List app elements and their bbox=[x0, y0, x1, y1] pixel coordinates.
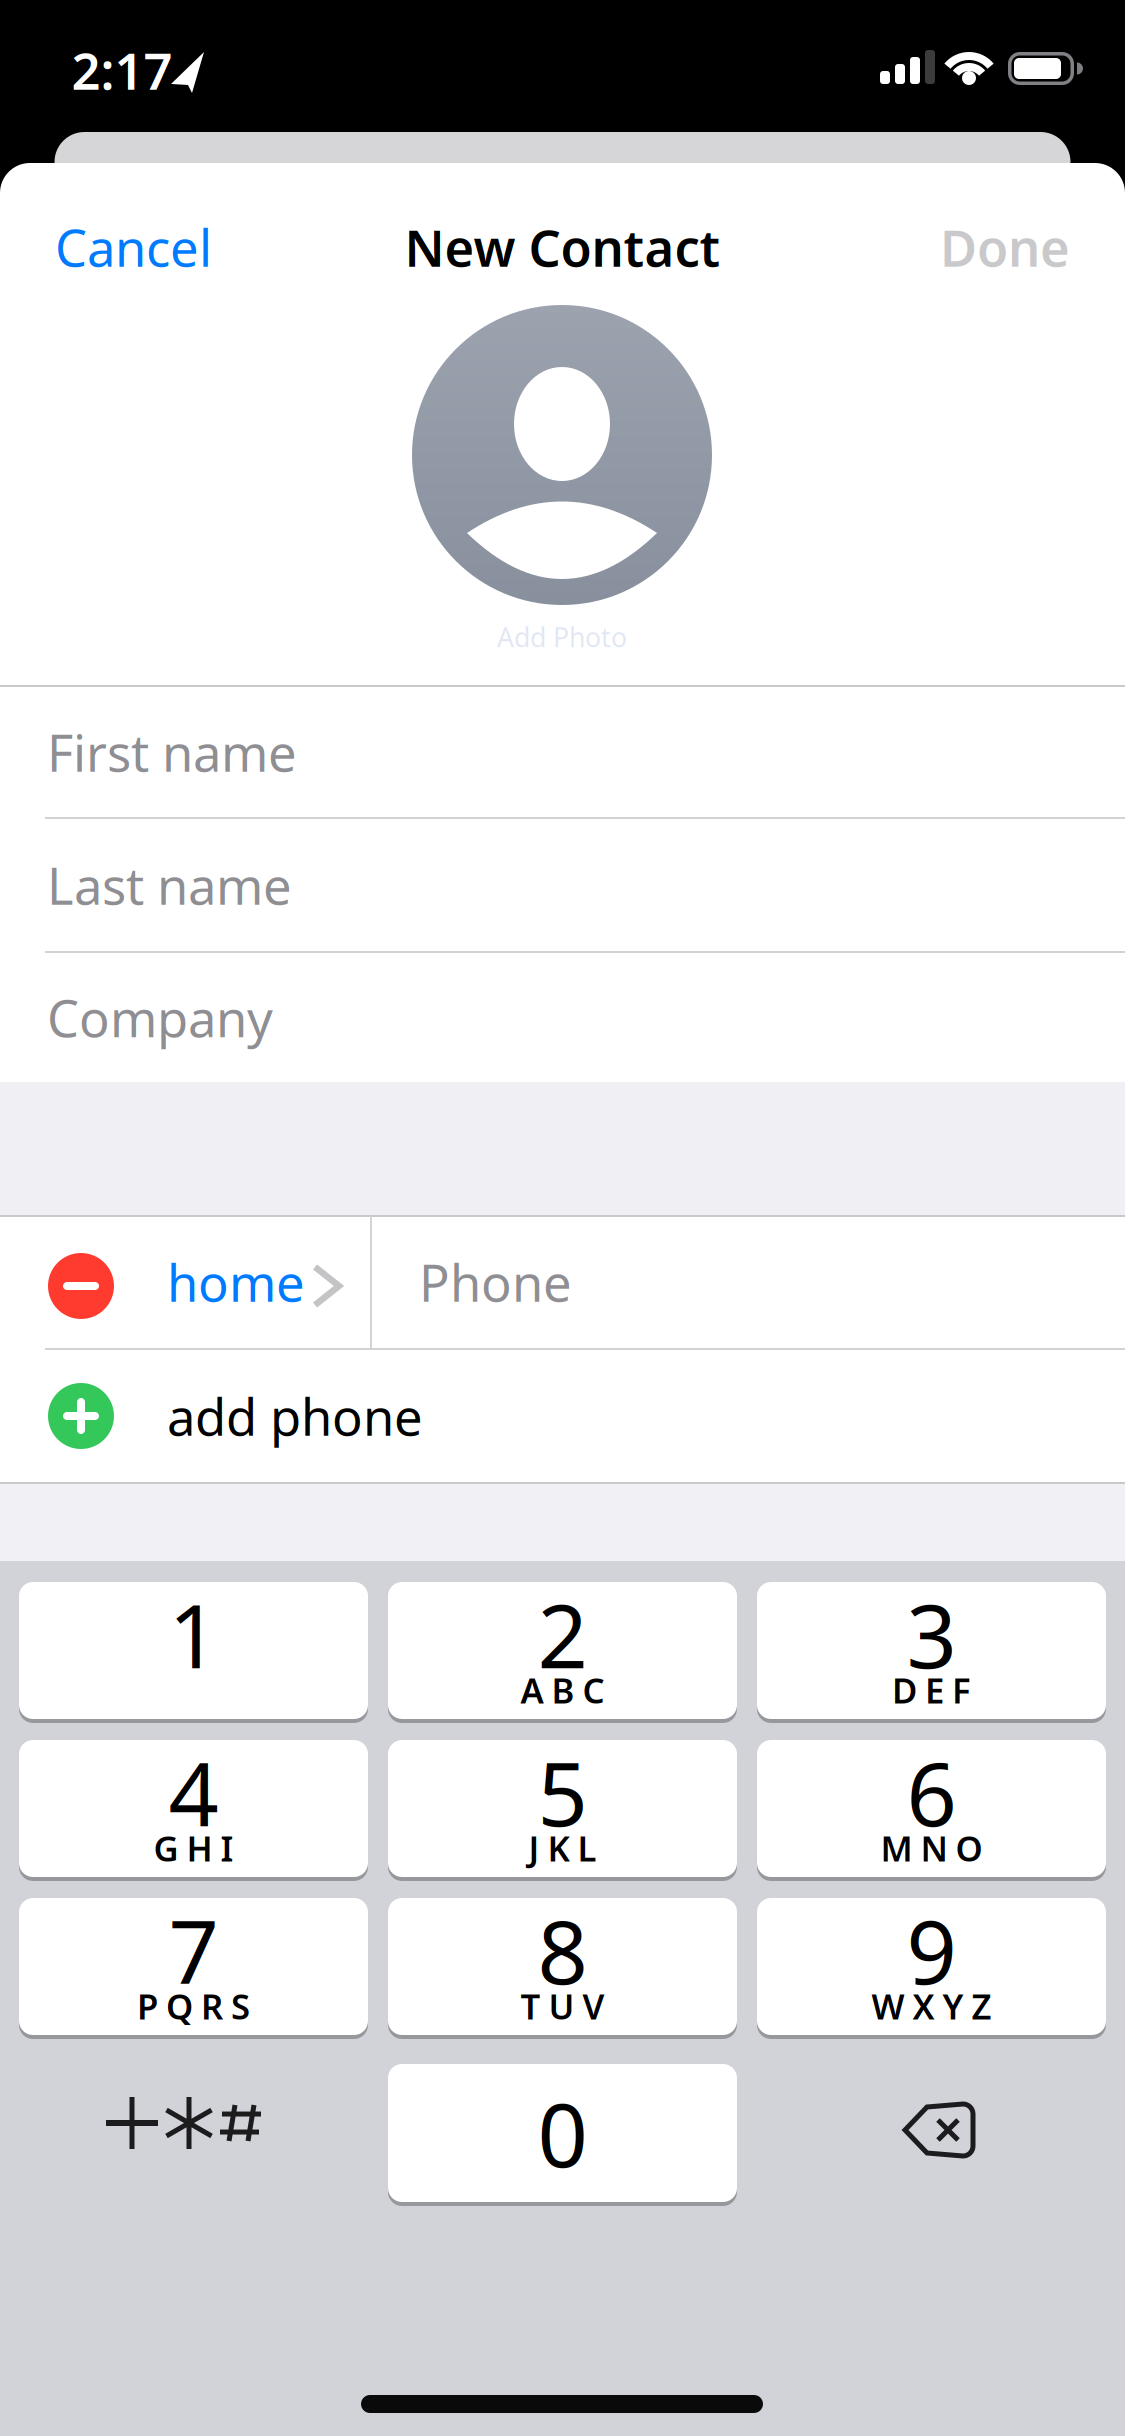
button[interactable]: 5 bbox=[388, 1738, 737, 1879]
staticText: JKL bbox=[528, 1825, 596, 1871]
staticText: TUV bbox=[520, 1983, 604, 2029]
staticText: ABC bbox=[520, 1667, 604, 1713]
button[interactable]: Symbols bbox=[104, 2097, 261, 2149]
button[interactable]: Cancel bbox=[55, 197, 285, 297]
button[interactable]: 4 bbox=[19, 1738, 368, 1879]
staticText: Last name bbox=[47, 851, 292, 919]
staticText: 1 bbox=[168, 1576, 218, 1692]
staticText: home bbox=[167, 1248, 305, 1316]
button[interactable]: 0 bbox=[388, 2062, 737, 2204]
staticText: DEF bbox=[892, 1667, 971, 1713]
staticText: 5 bbox=[537, 1734, 587, 1850]
button[interactable]: add phone bbox=[48, 1350, 1125, 1482]
staticText: Phone bbox=[419, 1248, 572, 1316]
staticText: GHI bbox=[153, 1825, 233, 1871]
staticText: 3 bbox=[906, 1576, 956, 1692]
button[interactable]: Company bbox=[47, 953, 1125, 1082]
button[interactable]: 3 bbox=[757, 1580, 1106, 1721]
staticText: 4 bbox=[168, 1734, 218, 1850]
button[interactable]: 8 bbox=[388, 1896, 737, 2037]
button[interactable]: home bbox=[167, 1216, 397, 1348]
staticText: 2:17 bbox=[71, 36, 172, 104]
button[interactable]: 6 bbox=[757, 1738, 1106, 1879]
staticText: Cancel bbox=[55, 213, 212, 281]
button[interactable]: 9 bbox=[757, 1896, 1106, 2037]
staticText: PQRS bbox=[137, 1983, 250, 2029]
staticText: MNO bbox=[880, 1825, 982, 1871]
staticText: WXYZ bbox=[871, 1983, 991, 2029]
staticText: First name bbox=[47, 718, 297, 786]
button[interactable]: 1 bbox=[19, 1580, 368, 1721]
staticText: 9 bbox=[906, 1892, 956, 2008]
button[interactable]: Phone bbox=[419, 1216, 1099, 1348]
staticText: 0 bbox=[537, 2075, 587, 2191]
staticText: add phone bbox=[167, 1382, 423, 1450]
staticText: 8 bbox=[537, 1892, 587, 2008]
staticText: New Contact bbox=[404, 213, 720, 281]
button[interactable]: Delete bbox=[905, 2104, 973, 2156]
staticText: 2 bbox=[537, 1576, 587, 1692]
staticText: Add Photo bbox=[497, 619, 627, 655]
button[interactable]: First name bbox=[47, 687, 1125, 817]
button[interactable]: Add Photo bbox=[402, 305, 722, 661]
button[interactable]: Done bbox=[840, 197, 1070, 297]
button[interactable]: Last name bbox=[47, 819, 1125, 951]
staticText: Done bbox=[940, 213, 1070, 281]
staticText: Company bbox=[47, 984, 273, 1051]
button[interactable]: 7 bbox=[19, 1896, 368, 2037]
button[interactable]: 2 bbox=[388, 1580, 737, 1721]
staticText: 7 bbox=[168, 1892, 218, 2008]
button[interactable]: Delete phone bbox=[48, 1253, 114, 1319]
staticText: 6 bbox=[906, 1734, 956, 1850]
